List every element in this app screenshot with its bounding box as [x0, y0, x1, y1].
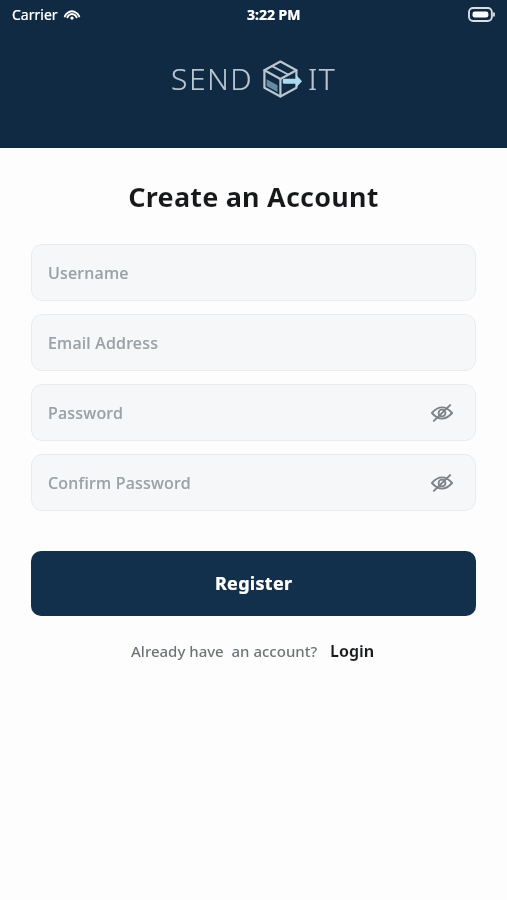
staticText: Already have an account? — [131, 641, 318, 661]
button[interactable]: Email Address — [31, 314, 476, 371]
staticText: Email Address — [48, 332, 159, 354]
button[interactable]: Register — [31, 551, 476, 616]
staticText: IT — [308, 58, 337, 99]
button[interactable]: Password — [31, 384, 476, 441]
staticText: 3:22 PM — [247, 5, 301, 24]
button[interactable]: Login — [328, 638, 377, 664]
staticText: SEND — [171, 58, 254, 99]
staticText: Carrier — [12, 5, 58, 24]
button[interactable]: Username — [31, 244, 476, 301]
button[interactable]: Toggle password visibility — [425, 466, 459, 500]
staticText: Password — [48, 402, 124, 424]
other: Send It logo — [262, 60, 302, 98]
staticText: Register — [215, 571, 293, 596]
button[interactable]: Toggle password visibility — [425, 396, 459, 430]
staticText: Confirm Password — [48, 472, 191, 494]
staticText: Username — [48, 262, 129, 284]
staticText: Create an Account — [128, 178, 379, 215]
staticText: Login — [330, 640, 375, 662]
button[interactable]: Confirm Password — [31, 454, 476, 511]
